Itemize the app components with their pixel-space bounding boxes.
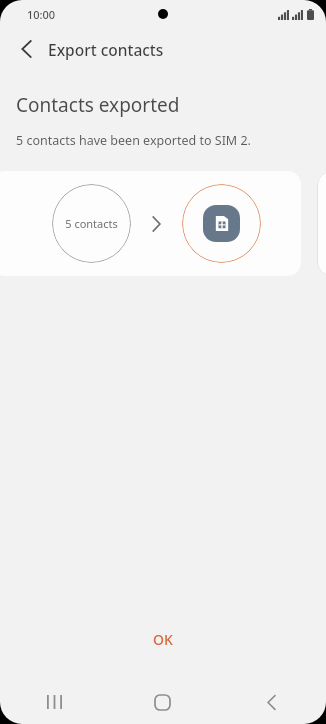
button[interactable]: Back — [8, 31, 44, 67]
button[interactable]: OK — [131, 622, 195, 657]
button[interactable]: Next page — [317, 171, 326, 276]
staticText: OK — [153, 630, 173, 649]
button[interactable]: Home — [108, 680, 217, 724]
button[interactable]: Recent apps — [0, 680, 108, 724]
button[interactable]: 5 contacts — [0, 171, 301, 276]
staticText: 5 contacts have been exported to SIM 2. — [16, 132, 251, 149]
staticText: Contacts exported — [16, 92, 180, 118]
button[interactable]: Back — [217, 680, 326, 724]
staticText: Export contacts — [48, 39, 164, 60]
staticText: 10:00 — [27, 7, 56, 22]
staticText: 5 contacts — [65, 216, 118, 231]
